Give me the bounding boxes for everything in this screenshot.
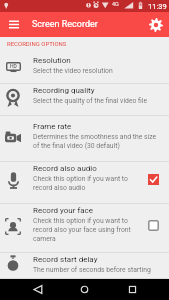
staticText: Recording quality [33, 86, 95, 95]
button[interactable]: Back [27, 279, 48, 300]
button[interactable]: Recording quality [0, 84, 169, 116]
staticText: Select the quality of the final video fi… [33, 97, 148, 105]
button[interactable]: Menu [0, 12, 27, 37]
button[interactable]: Home [74, 279, 95, 300]
button[interactable]: Toggle Record also audio [148, 174, 159, 185]
staticText: Record also audio [33, 164, 97, 173]
button[interactable]: Settings [142, 12, 169, 37]
staticText: Determines the smoothness and the size o… [33, 133, 158, 150]
staticText: HD [10, 63, 17, 69]
staticText: Select the video resolution [33, 67, 113, 75]
staticText: 11:39 [148, 2, 167, 11]
staticText: RECORDING OPTIONS [7, 40, 67, 47]
button[interactable]: Record start delay [0, 253, 169, 279]
button[interactable]: Record also audio [0, 162, 169, 204]
staticText: Check this option if you want to record … [33, 175, 131, 192]
staticText: Resolution [33, 56, 71, 65]
staticText: Record start delay [33, 255, 98, 264]
button[interactable]: Recents [122, 279, 143, 300]
staticText: Frame rate [33, 122, 72, 131]
staticText: Check this option if you want to record … [33, 217, 131, 243]
button[interactable]: Toggle Record your face [148, 220, 159, 231]
button[interactable]: Record your face [0, 204, 169, 253]
staticText: Screen Recorder [32, 19, 98, 30]
button[interactable]: HD [0, 54, 169, 84]
staticText: 4G [112, 1, 119, 7]
staticText: The number of seconds before starting th… [33, 266, 158, 274]
staticText: Record your face [33, 206, 94, 215]
button[interactable]: Frame rate [0, 116, 169, 162]
